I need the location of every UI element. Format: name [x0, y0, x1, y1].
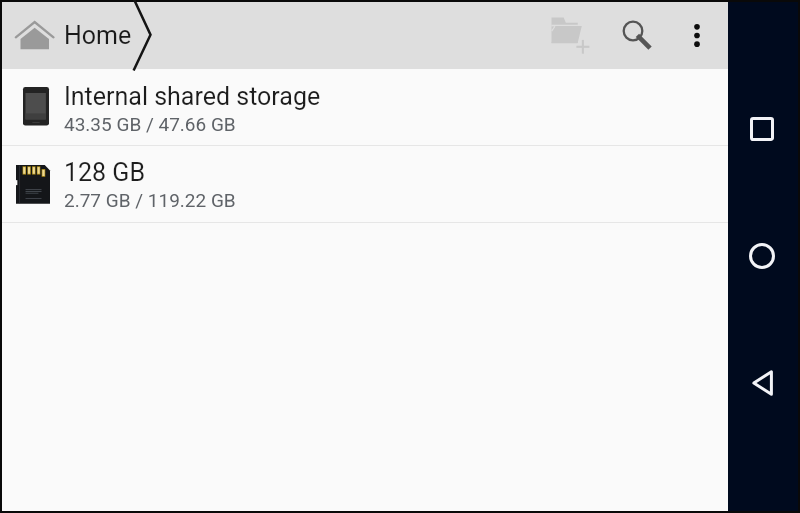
button[interactable]: Search: [614, 12, 660, 58]
button[interactable]: Home: [727, 223, 797, 289]
staticText: 128 GB: [64, 158, 145, 187]
staticText: 2.77 GB / 119.22 GB: [64, 189, 236, 211]
button[interactable]: More options: [677, 11, 717, 59]
staticText: Home: [64, 21, 132, 50]
button[interactable]: 128 GB: [2, 146, 728, 222]
staticText: 43.35 GB / 47.66 GB: [64, 113, 236, 135]
button[interactable]: New folder: [543, 11, 593, 58]
staticText: Internal shared storage: [64, 82, 321, 111]
button[interactable]: Recents: [727, 96, 797, 162]
button[interactable]: Back: [727, 350, 797, 416]
button[interactable]: Internal shared storage: [2, 69, 728, 145]
button[interactable]: Home: [10, 2, 146, 69]
